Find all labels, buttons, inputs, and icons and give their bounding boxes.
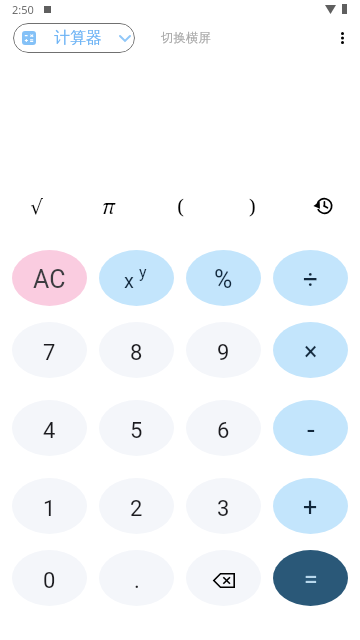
staticText: √ <box>30 195 43 218</box>
staticText: 7 <box>43 340 56 366</box>
staticText: 0 <box>43 568 56 594</box>
staticText: + <box>303 493 318 522</box>
button[interactable]: 5 <box>99 400 174 456</box>
staticText: 2:50 <box>12 2 34 17</box>
button[interactable]: 9 <box>186 322 261 378</box>
button[interactable]: 8 <box>99 322 174 378</box>
button[interactable]: ( <box>144 191 216 221</box>
staticText: % <box>214 265 233 294</box>
staticText: y <box>139 263 147 282</box>
button[interactable]: . <box>99 550 174 606</box>
button[interactable]: x <box>99 250 174 306</box>
button[interactable]: 4 <box>12 400 87 456</box>
button[interactable]: × <box>273 322 348 378</box>
button[interactable]: AC <box>12 250 87 306</box>
staticText: 5 <box>130 418 143 444</box>
button[interactable]: 3 <box>186 478 261 534</box>
button[interactable]: + <box>273 478 348 534</box>
staticText: × <box>304 337 318 366</box>
button[interactable]: = <box>273 550 348 606</box>
staticText: ) <box>249 193 256 220</box>
button[interactable]: More options <box>326 22 358 54</box>
staticText: 1 <box>43 496 56 522</box>
button[interactable]: 0 <box>12 550 87 606</box>
staticText: 9 <box>217 340 230 366</box>
staticText: = <box>304 565 318 594</box>
staticText: 6 <box>217 418 230 444</box>
button[interactable]: √ <box>0 191 72 221</box>
button[interactable]: Delete <box>186 550 261 606</box>
button[interactable]: 计算器 <box>13 23 135 53</box>
staticText: 2 <box>130 496 143 522</box>
button[interactable]: 切换横屏 <box>161 30 211 46</box>
staticText: x <box>124 269 134 292</box>
staticText: π <box>102 193 115 220</box>
staticText: 3 <box>217 496 230 522</box>
staticText: 4 <box>43 418 56 444</box>
button[interactable]: ) <box>216 191 288 221</box>
staticText: - <box>307 413 315 446</box>
button[interactable]: 6 <box>186 400 261 456</box>
button[interactable]: - <box>273 400 348 456</box>
staticText: 8 <box>130 340 143 366</box>
staticText: ÷ <box>303 264 318 294</box>
button[interactable]: ÷ <box>273 250 348 306</box>
staticText: . <box>134 568 140 594</box>
staticText: ( <box>177 193 184 220</box>
button[interactable]: History <box>288 191 360 221</box>
staticText: 计算器 <box>54 28 102 48</box>
button[interactable]: 2 <box>99 478 174 534</box>
button[interactable]: % <box>186 250 261 306</box>
button[interactable]: π <box>72 191 144 221</box>
button[interactable]: 7 <box>12 322 87 378</box>
staticText: AC <box>33 265 66 294</box>
button[interactable]: 1 <box>12 478 87 534</box>
